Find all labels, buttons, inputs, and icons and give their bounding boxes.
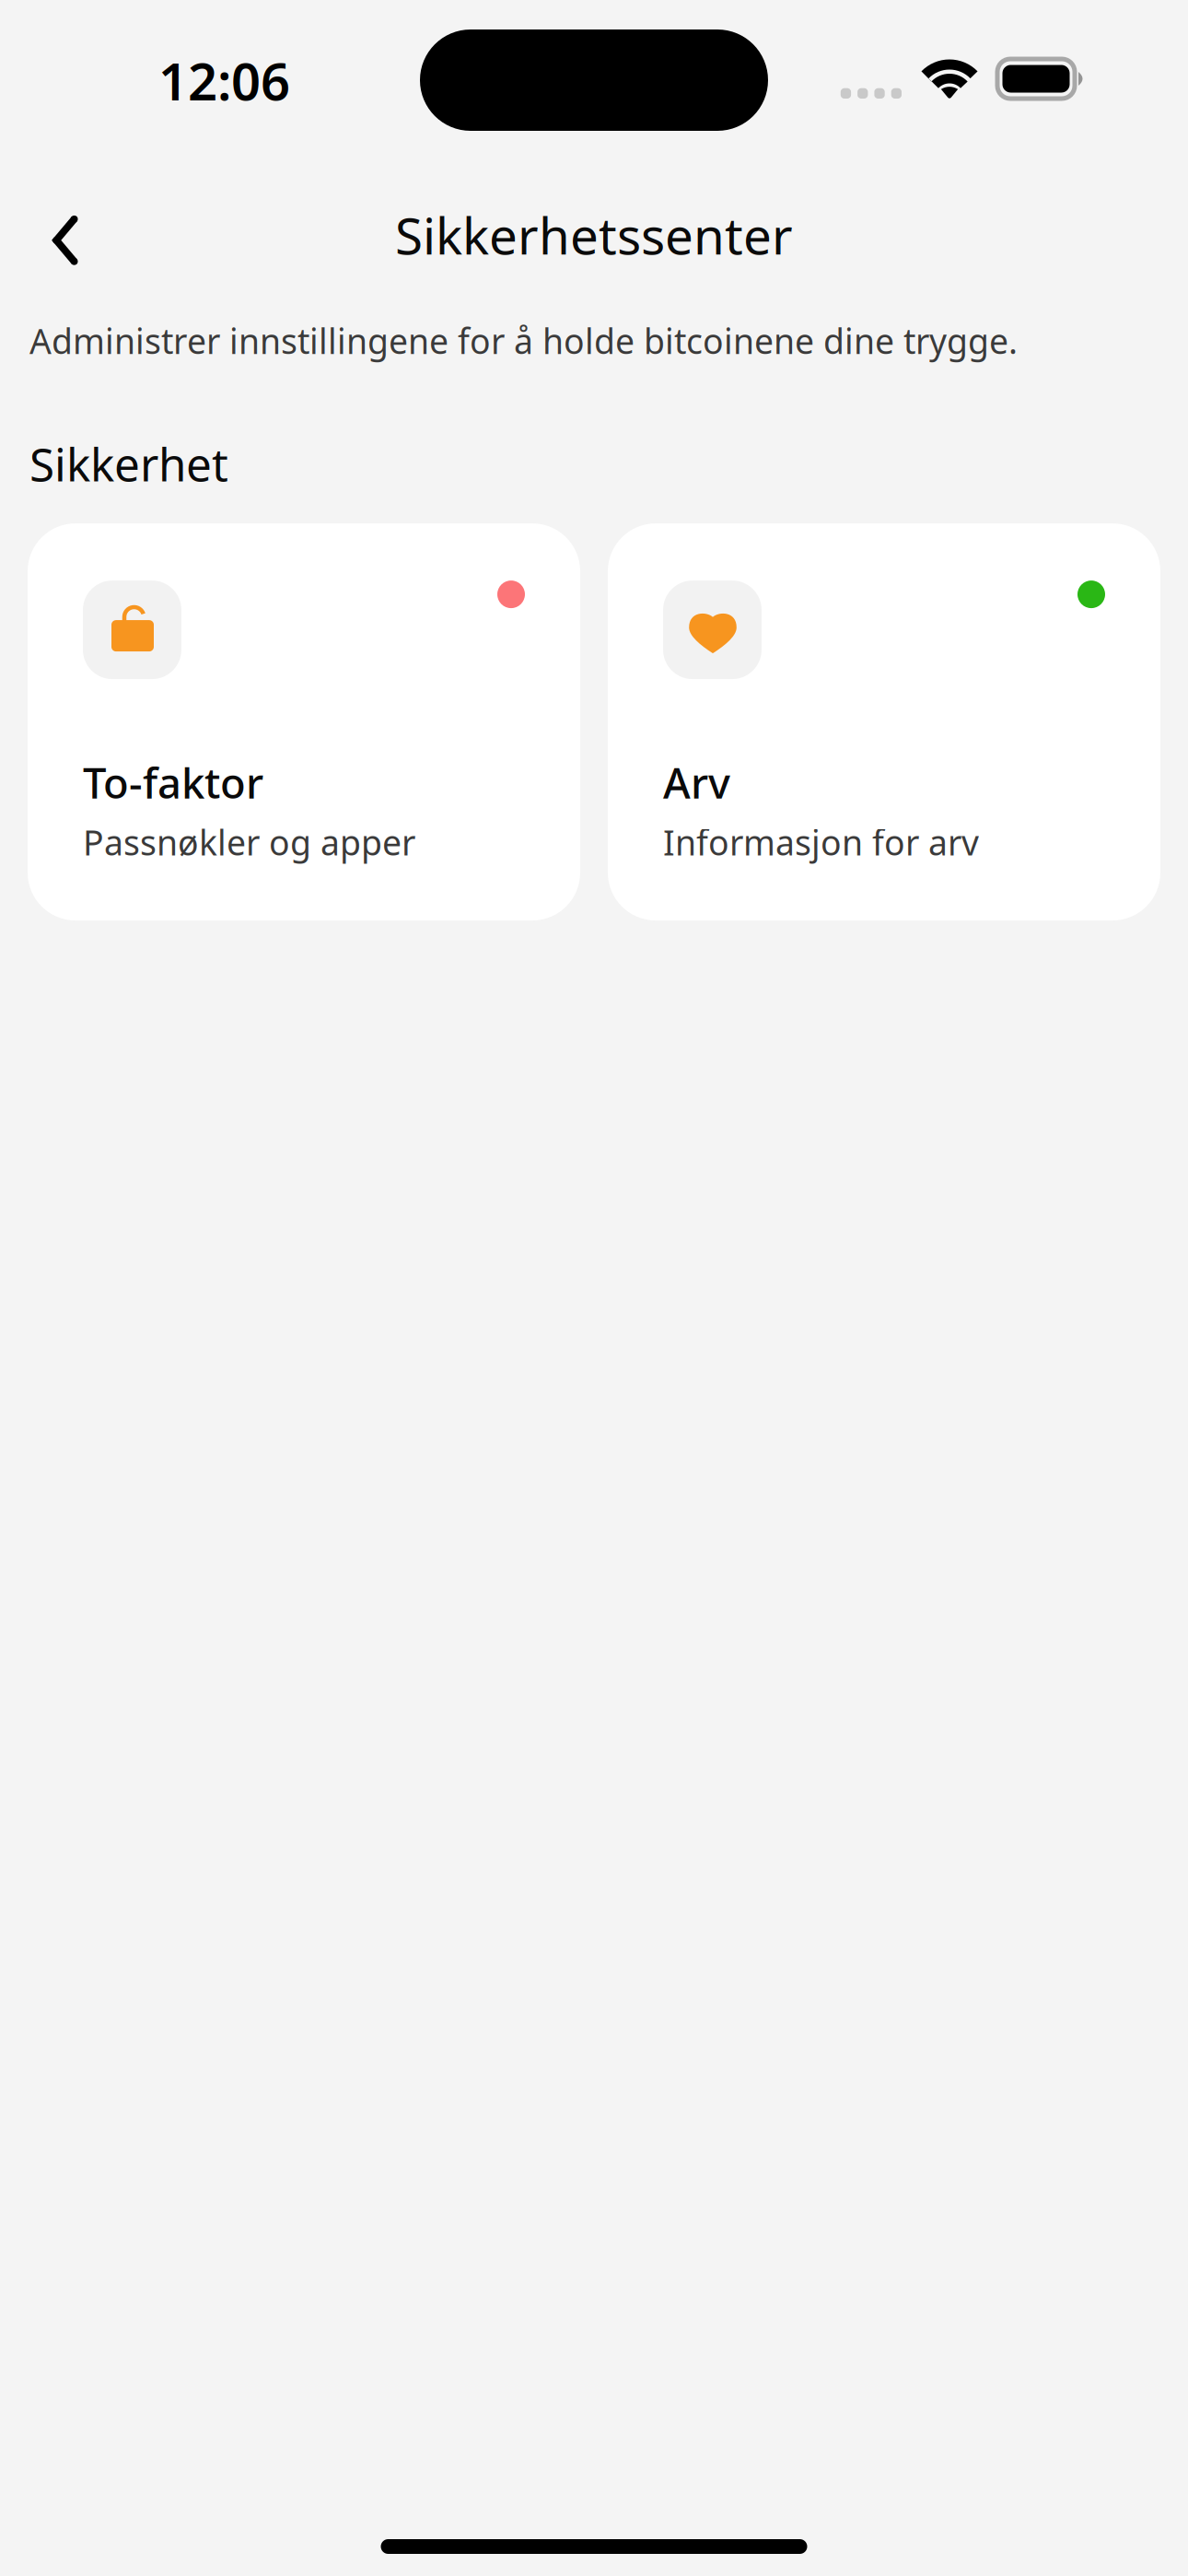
button[interactable]: Back [0,188,109,289]
staticText: Sikkerhet [29,434,228,494]
staticText: Passnøkler og apper [83,819,415,865]
button[interactable]: Arv [608,523,1160,920]
staticText: Arv [663,755,730,810]
staticText: Sikkerhetssenter [395,201,793,268]
staticText: 12:06 [158,46,290,115]
staticText: Administrer innstillingene for å holde b… [29,318,1018,364]
button[interactable]: To-faktor [28,523,580,920]
staticText: Informasjon for arv [663,819,979,865]
staticText: To-faktor [83,755,263,810]
